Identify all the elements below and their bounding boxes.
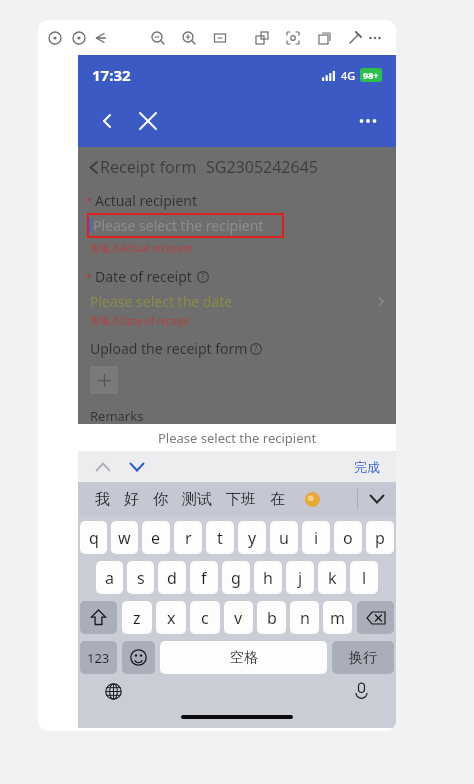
button[interactable]: Fit to screen [210,28,230,48]
button[interactable]: Expand candidates [358,482,396,516]
button[interactable]: More [354,107,382,135]
staticText: w [118,527,131,549]
staticText: q [89,527,99,549]
button[interactable]: Close [134,107,162,135]
staticText: 17:32 [92,65,131,85]
staticText: i [314,527,319,549]
button[interactable]: w [111,521,138,554]
staticText: x [167,607,176,629]
button[interactable]: y [238,521,266,554]
button[interactable]: 下班 [219,485,263,514]
staticText: 98+ [363,69,379,81]
button[interactable]: v [224,601,253,634]
staticText: o [343,527,353,549]
button[interactable]: d [158,561,186,594]
button[interactable]: 空格 [160,641,327,674]
button[interactable]: t [206,521,234,554]
staticText: 完成 [354,459,380,475]
staticText: j [298,567,303,589]
button[interactable]: p [366,521,394,554]
staticText: 在 [270,490,285,509]
button[interactable]: Zoom out [148,28,168,48]
button[interactable]: 好 [117,485,146,514]
button[interactable]: Next field [124,454,150,480]
button[interactable]: 我 [88,485,117,514]
button[interactable]: Layout inspector [252,28,272,48]
button[interactable]: Shift [80,601,117,634]
button[interactable]: Rotate [314,28,334,48]
button[interactable]: Emoji suggestion [300,487,324,511]
staticText: s [137,567,145,589]
button[interactable]: j [286,561,314,594]
button[interactable]: Close window [46,29,64,47]
staticText: b [267,607,277,629]
button[interactable]: More options [364,27,386,49]
button[interactable]: 你 [146,485,175,514]
button[interactable]: Add attachment [90,366,118,394]
staticText: * [86,269,93,284]
button[interactable]: o [334,521,362,554]
staticText: e [151,527,161,549]
button[interactable]: k [318,561,346,594]
button[interactable]: s [127,561,154,594]
button[interactable]: 完成 [350,455,384,479]
button[interactable]: Voice input [348,678,374,704]
staticText: r [185,527,192,549]
button[interactable]: i [302,521,330,554]
button[interactable]: b [257,601,286,634]
staticText: Remarks [90,407,144,424]
staticText: Please select the recipient [93,216,264,235]
button[interactable]: Stop [70,29,88,47]
staticText: n [300,607,310,629]
button[interactable]: 123 [80,641,117,674]
button[interactable]: Emoji keyboard [122,641,155,674]
button[interactable]: Select element [283,28,303,48]
staticText: 换行 [349,649,377,667]
staticText: h [263,567,273,589]
button[interactable]: 在 [263,485,292,514]
staticText: p [375,527,385,549]
staticText: c [201,607,209,629]
staticText: 请输入 [90,242,120,255]
button[interactable]: q [80,521,107,554]
staticText: Upload the receipt form [90,339,248,358]
button[interactable]: a [96,561,123,594]
button[interactable]: h [254,561,282,594]
staticText: v [234,607,243,629]
staticText: Date of receipt [95,267,192,286]
staticText: 123 [87,649,110,667]
button[interactable]: n [290,601,319,634]
button[interactable]: Back [92,108,118,134]
staticText: g [231,567,241,589]
staticText: 我 [95,490,110,509]
button[interactable]: u [270,521,298,554]
button[interactable]: g [222,561,250,594]
staticText: 4G [341,68,356,83]
staticText: SG2305242645 [206,156,318,178]
staticText: Please select the date [90,292,233,311]
button[interactable]: r [174,521,202,554]
staticText: ? [201,271,205,282]
button[interactable]: e [142,521,170,554]
button[interactable]: z [122,601,152,634]
button[interactable]: l [350,561,378,594]
staticText: Actual recipient [120,241,193,255]
button[interactable]: Change keyboard language [100,678,126,704]
button[interactable]: Please select the recipient [89,215,282,236]
button[interactable]: Inspect [345,28,365,48]
button[interactable]: m [323,601,352,634]
button[interactable]: 测试 [175,485,219,514]
button[interactable]: x [156,601,186,634]
button[interactable]: Zoom in [179,28,199,48]
button[interactable]: Backspace [357,601,394,634]
button[interactable]: 换行 [332,641,394,674]
staticText: Receipt form [100,156,197,178]
button[interactable]: Please select the date [90,292,384,311]
button[interactable]: Back [90,28,110,48]
button[interactable]: c [190,601,220,634]
staticText: 下班 [226,490,256,509]
button[interactable]: Previous field [90,454,116,480]
button[interactable]: f [190,561,218,594]
staticText: a [105,567,114,589]
staticText: z [133,607,141,629]
